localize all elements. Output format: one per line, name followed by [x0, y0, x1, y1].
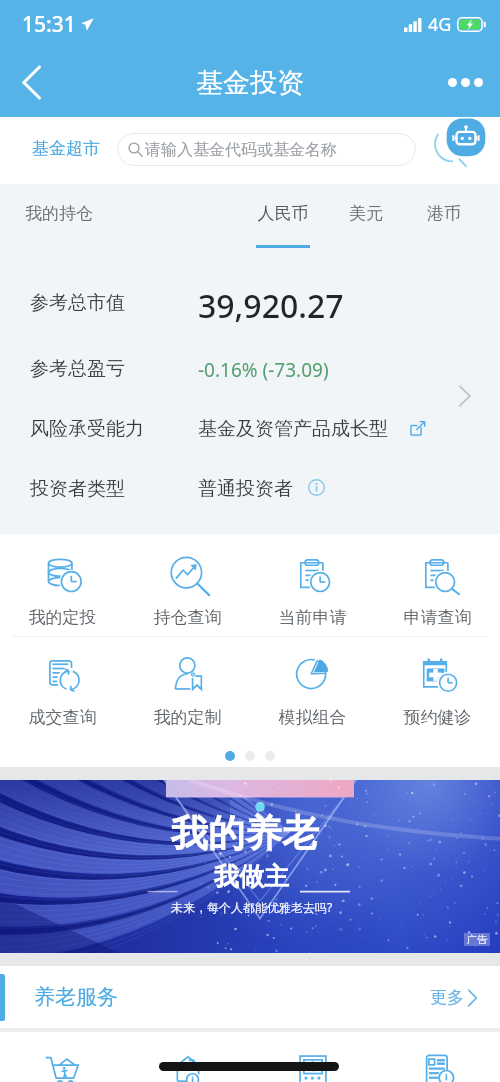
staticText: 我的定制 — [125, 707, 250, 728]
button[interactable]: 我的定投 — [0, 534, 125, 634]
button[interactable]: Home — [125, 1032, 250, 1082]
staticText: 人民币 — [250, 203, 316, 224]
button[interactable]: More options — [438, 48, 500, 117]
staticText: 模拟组合 — [250, 707, 375, 728]
staticText: 投资者类型 — [30, 477, 125, 501]
button[interactable]: 持仓查询 — [125, 534, 250, 634]
staticText: 基金投资 — [196, 66, 304, 100]
staticText: 普通投资者 — [198, 477, 293, 501]
button[interactable]: 预约健诊 — [375, 634, 500, 734]
button[interactable]: 参考总市值 — [0, 249, 500, 534]
staticText: 风险承受能力 — [30, 417, 144, 441]
button[interactable]: 当前申请 — [250, 534, 375, 634]
button[interactable]: 我的持仓 — [25, 203, 93, 224]
staticText: 我的定投 — [0, 607, 125, 628]
staticText: 参考总市值 — [30, 291, 125, 315]
button[interactable]: 基金超市 — [32, 138, 100, 159]
staticText: 我做主 — [214, 861, 289, 892]
staticText: 当前申请 — [250, 607, 375, 628]
button[interactable]: News — [375, 1032, 500, 1082]
button[interactable]: 成交查询 — [0, 634, 125, 734]
button[interactable]: Services — [250, 1032, 375, 1082]
staticText: 美元 — [335, 203, 397, 224]
staticText: 基金超市 — [32, 138, 100, 159]
staticText: 更多 — [430, 987, 464, 1008]
staticText: 39,920.27 — [198, 284, 344, 328]
staticText: -0.16% (-73.09) — [198, 357, 329, 383]
staticText: 我的养老 — [171, 810, 319, 857]
staticText: 预约健诊 — [375, 707, 500, 728]
staticText: 15:31 — [22, 10, 76, 39]
staticText: 养老服务 — [34, 984, 118, 1010]
button[interactable]: Back — [6, 48, 56, 117]
button[interactable]: 美元 — [335, 184, 397, 249]
button[interactable]: 我的养老 — [0, 780, 500, 953]
button[interactable]: 我的定制 — [125, 634, 250, 734]
staticText: 4G — [428, 12, 452, 37]
button[interactable]: 更多 — [430, 987, 478, 1008]
staticText: 广告 — [467, 933, 487, 946]
button[interactable]: 请输入基金代码或基金名称 — [117, 133, 416, 166]
button[interactable]: Chat assistant — [434, 116, 488, 170]
staticText: 参考总盈亏 — [30, 357, 125, 381]
button[interactable]: 申请查询 — [375, 534, 500, 634]
staticText: 港币 — [413, 203, 475, 224]
staticText: 请输入基金代码或基金名称 — [145, 140, 337, 160]
button[interactable]: 人民币 — [250, 184, 316, 249]
staticText: 未来，每个人都能优雅老去吗? — [171, 899, 333, 915]
button[interactable]: Mall — [0, 1032, 125, 1082]
staticText: 持仓查询 — [125, 607, 250, 628]
button[interactable]: 模拟组合 — [250, 634, 375, 734]
staticText: 我的持仓 — [25, 203, 93, 224]
staticText: 基金及资管产品成长型 — [198, 417, 388, 441]
button[interactable]: 港币 — [413, 184, 475, 249]
staticText: 申请查询 — [375, 607, 500, 628]
staticText: 成交查询 — [0, 707, 125, 728]
